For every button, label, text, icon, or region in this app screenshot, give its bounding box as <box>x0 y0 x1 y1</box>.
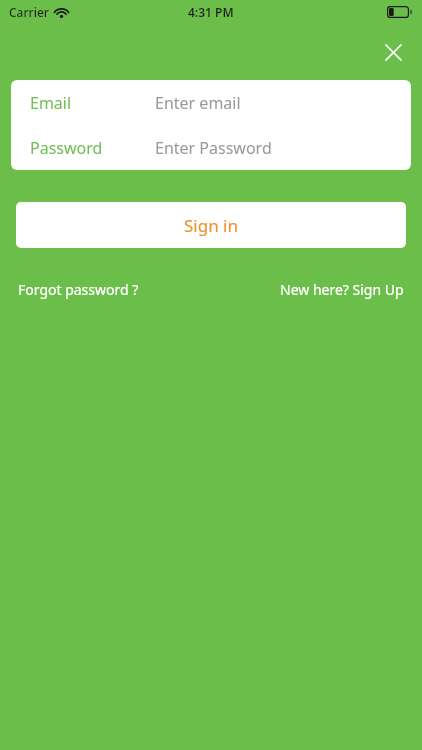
staticText: Enter email <box>155 92 241 114</box>
button[interactable]: Password <box>11 125 411 170</box>
staticText: Forgot password ? <box>18 280 139 299</box>
button[interactable]: Forgot password ? <box>18 276 139 303</box>
staticText: New here? Sign Up <box>280 280 404 299</box>
staticText: Email <box>30 92 72 114</box>
staticText: Sign in <box>184 214 238 237</box>
button[interactable]: New here? Sign Up <box>280 276 404 303</box>
button[interactable]: Sign in <box>16 202 406 248</box>
staticText: Carrier <box>9 4 49 20</box>
button[interactable]: Close <box>376 35 410 69</box>
button[interactable]: Email <box>11 80 411 125</box>
staticText: Password <box>30 137 103 159</box>
staticText: 4:31 PM <box>188 4 234 20</box>
staticText: Enter Password <box>155 137 272 159</box>
